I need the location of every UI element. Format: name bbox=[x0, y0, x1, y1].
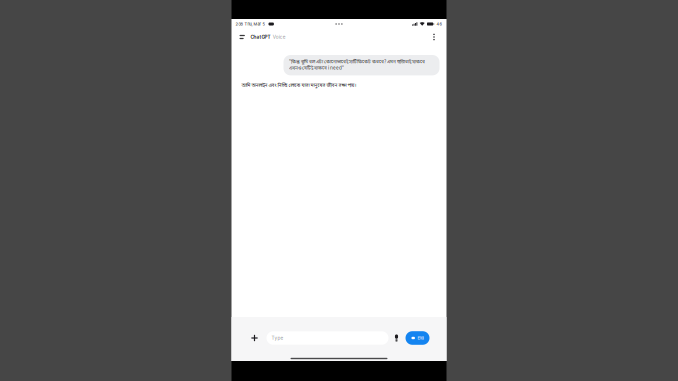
button[interactable]: Type bbox=[266, 331, 388, 345]
button[interactable]: Menu bbox=[239, 30, 250, 44]
button[interactable]: More options bbox=[428, 30, 439, 44]
staticText: আমি অনলাইন এবং নিচ্ছি লোকে যারা মানুষের … bbox=[241, 82, 356, 89]
staticText: End bbox=[417, 336, 423, 340]
button[interactable]: Voice input bbox=[390, 330, 402, 346]
staticText: 2:38 Thu, Mar 5 bbox=[235, 22, 264, 26]
button[interactable]: End bbox=[405, 331, 429, 345]
staticText: 46 bbox=[436, 22, 441, 26]
staticText: Type bbox=[271, 335, 283, 341]
staticText: ChatGPT bbox=[250, 34, 270, 40]
staticText: Voice bbox=[273, 34, 286, 40]
staticText: "কিন্তু তুমি বল এটা কোনোভাবেই সার্টিফিকে… bbox=[289, 59, 425, 71]
button[interactable]: ChatGPT bbox=[250, 30, 286, 44]
button[interactable]: Add attachment bbox=[246, 330, 262, 346]
